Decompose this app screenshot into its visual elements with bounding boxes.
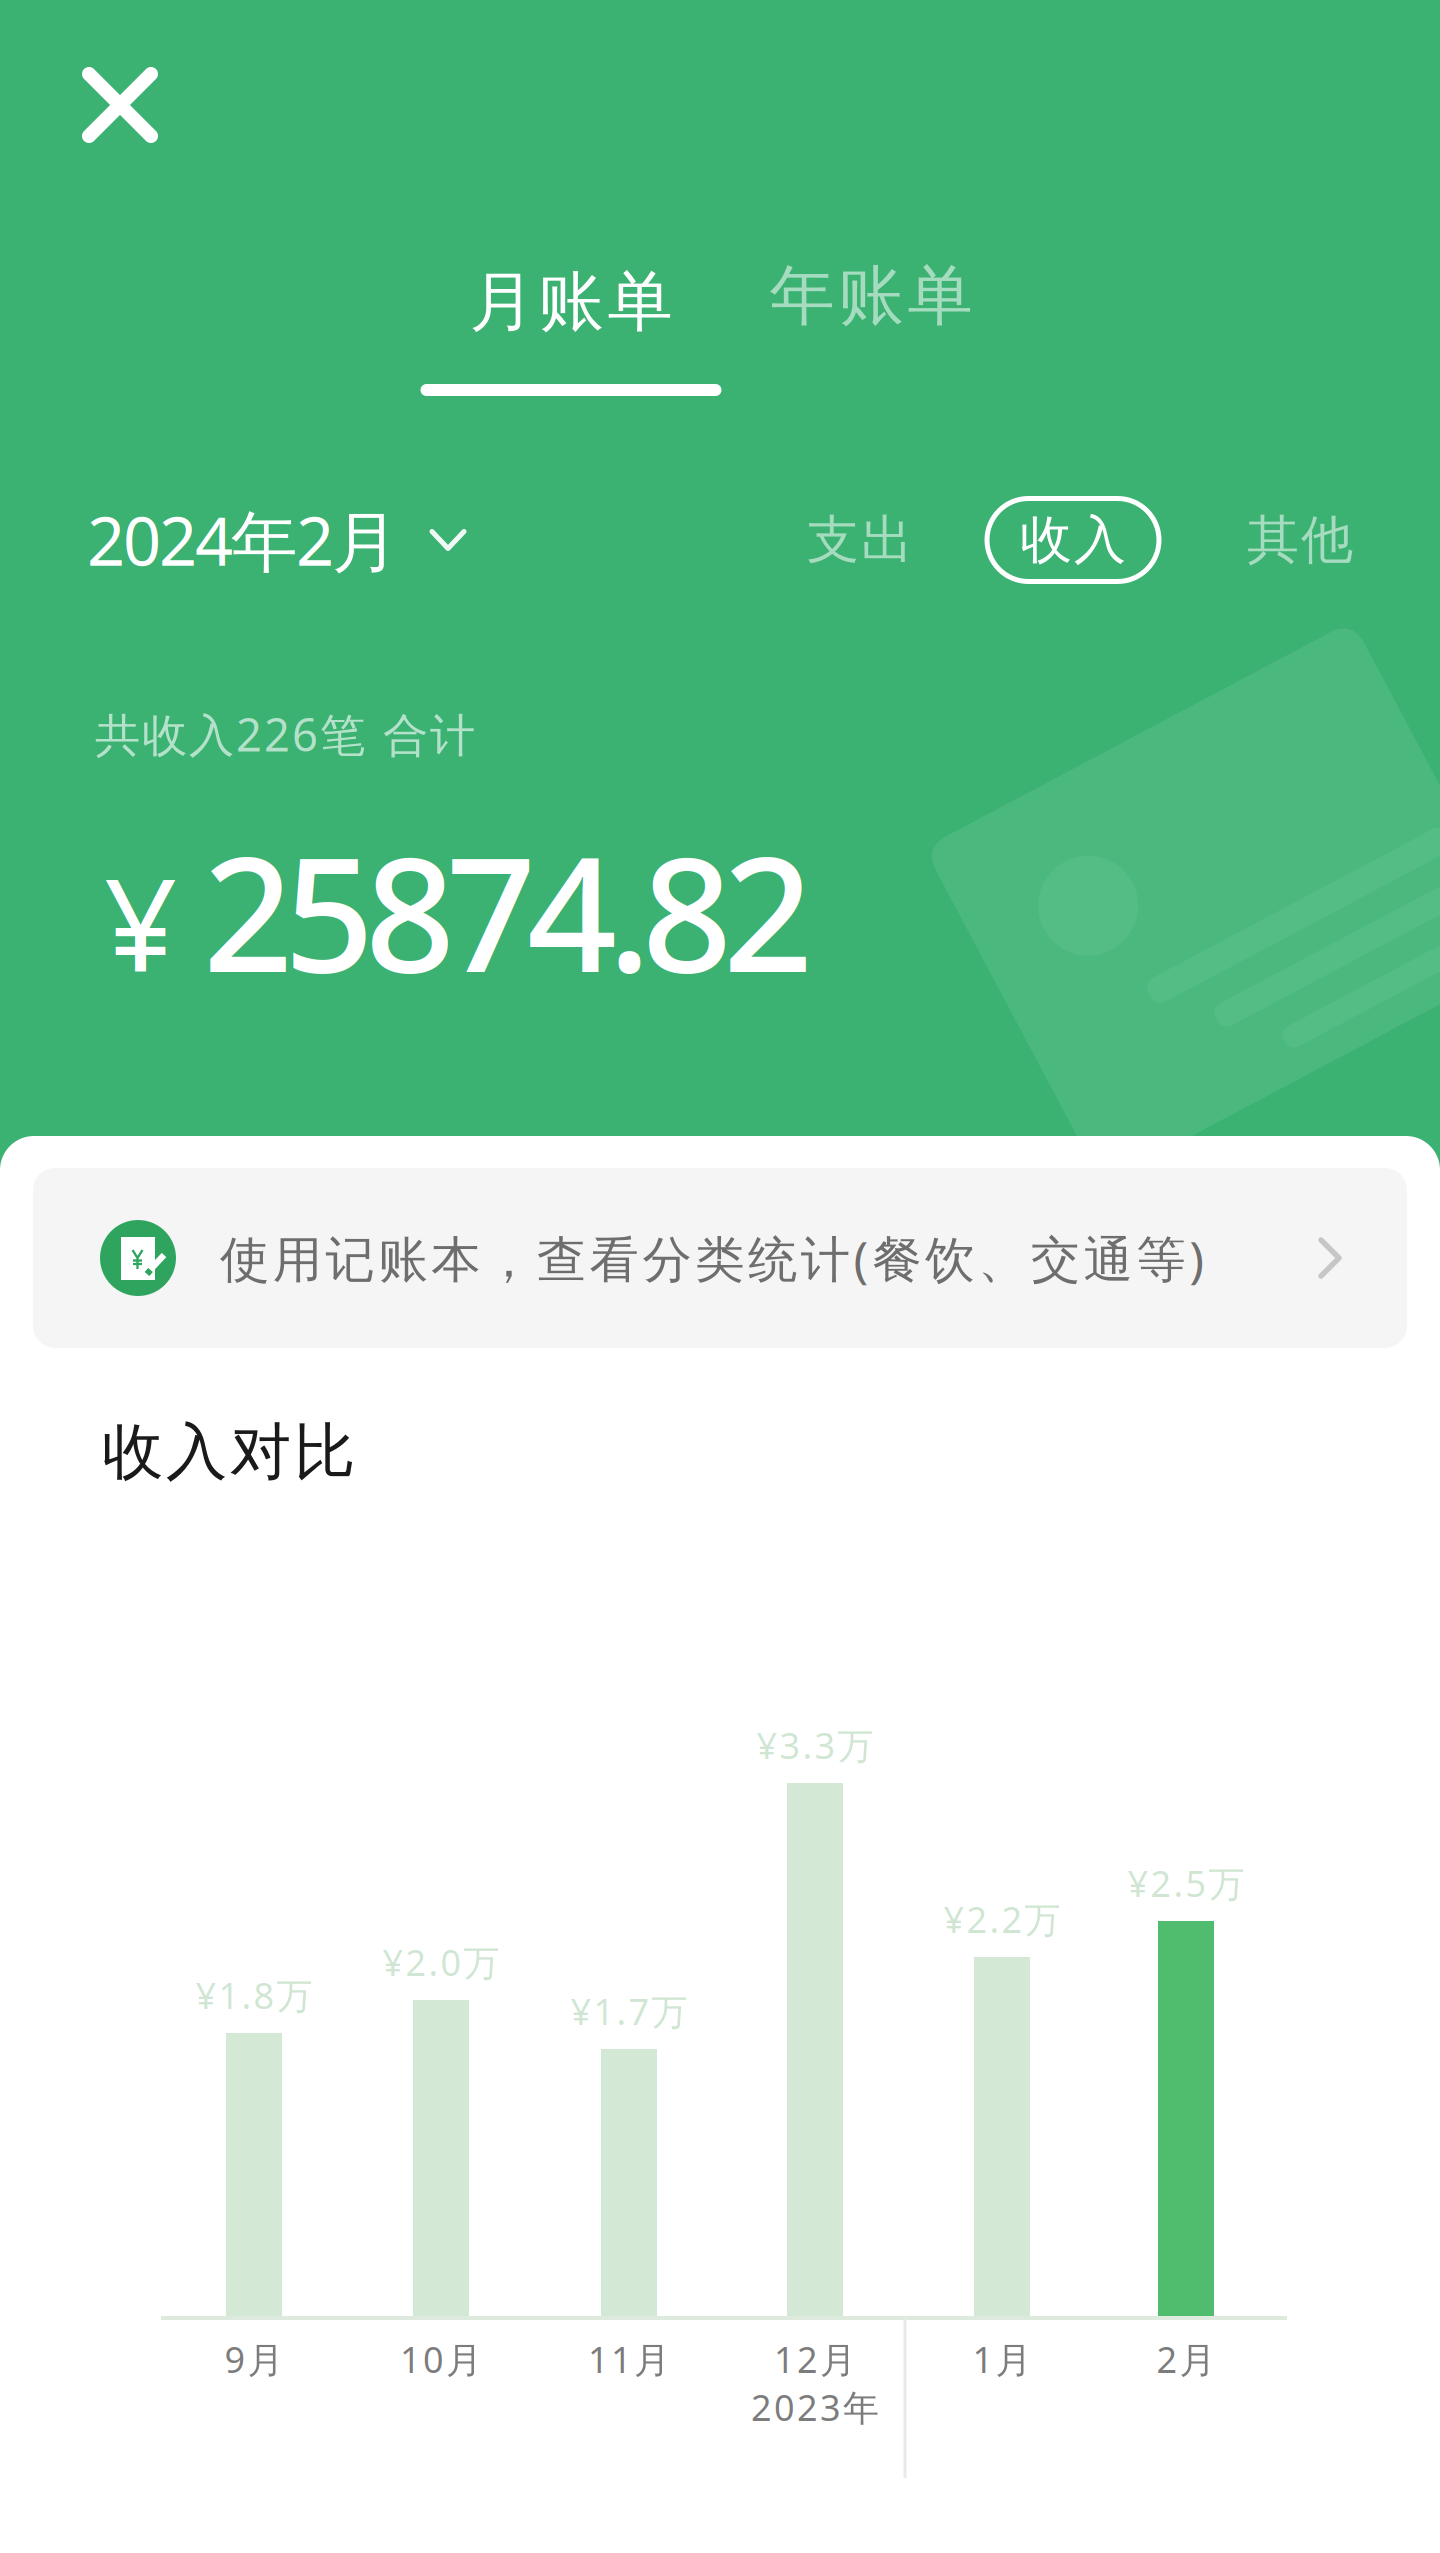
staticText: 2月 <box>1156 2335 1215 2383</box>
button[interactable]: 年账单 <box>751 258 991 334</box>
staticText: 11月 <box>588 2335 670 2383</box>
button[interactable]: 使用记账本，查看分类统计(餐饮、交通等) <box>33 1168 1407 1348</box>
staticText: ¥3.3万 <box>756 1721 873 1769</box>
button[interactable]: Close <box>45 40 195 170</box>
staticText: 10月 <box>400 2335 482 2383</box>
staticText: ¥ <box>104 837 177 1007</box>
staticText: ¥2.2万 <box>943 1895 1060 1943</box>
button[interactable]: 其他 <box>1230 498 1370 582</box>
staticText: 25874.82 <box>203 806 813 1015</box>
staticText: 年账单 <box>769 256 972 336</box>
button[interactable]: 1月 ¥2.2万 <box>909 1897 1095 2316</box>
staticText: 支出 <box>807 508 913 572</box>
button[interactable]: 收入 <box>987 498 1159 581</box>
button[interactable]: 11月 ¥1.7万 <box>536 1989 722 2316</box>
staticText: ¥2.0万 <box>382 1938 499 1986</box>
staticText: 9月 <box>224 2335 283 2383</box>
staticText: 1月 <box>972 2335 1031 2383</box>
staticText: 收入 <box>1020 508 1126 572</box>
staticText: 2023年 <box>751 2383 879 2431</box>
button[interactable]: 12月 ¥3.3万 <box>722 1723 908 2316</box>
button[interactable]: 9月 ¥1.8万 <box>161 1973 347 2316</box>
staticText: 使用记账本，查看分类统计(餐饮、交通等) <box>220 1225 1204 1291</box>
button[interactable]: 月账单 <box>420 264 721 396</box>
staticText: ¥1.8万 <box>195 1971 312 2019</box>
button[interactable]: 2024年2月 <box>92 492 492 588</box>
button[interactable]: 2月 ¥2.5万 <box>1093 1861 1279 2316</box>
staticText: 2024年2月 <box>87 496 399 584</box>
staticText: 共收入226笔 合计 <box>95 704 475 764</box>
staticText: ¥2.5万 <box>1127 1859 1244 1907</box>
staticText: 其他 <box>1247 508 1353 572</box>
staticText: ¥1.7万 <box>570 1987 687 2035</box>
staticText: 12月 <box>774 2335 856 2383</box>
staticText: 月账单 <box>469 262 672 342</box>
button[interactable]: 10月 ¥2.0万 <box>348 1940 534 2316</box>
staticText: 收入对比 <box>102 1414 355 1490</box>
button[interactable]: 支出 <box>790 498 930 582</box>
